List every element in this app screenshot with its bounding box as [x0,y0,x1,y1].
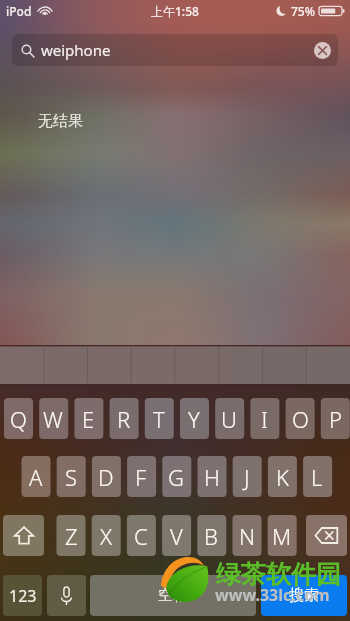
staticText: 75% [291,3,315,19]
staticText: Z [65,521,78,551]
staticText: I [261,404,268,434]
button[interactable]: Z [57,515,85,556]
staticText: 123 [9,585,37,607]
staticText: O [292,404,309,434]
staticText: W [43,404,63,434]
staticText: K [276,462,289,492]
staticText: R [117,404,131,434]
button[interactable]: T [145,398,173,439]
button[interactable]: H [198,456,226,497]
staticText: H [204,462,220,492]
staticText: L [311,462,323,492]
staticText: 上午1:58 [151,3,199,19]
button[interactable]: S [57,456,85,497]
button[interactable]: F [127,456,155,497]
button[interactable]: 123 [3,575,42,616]
button[interactable]: A [22,456,50,497]
button[interactable]: I [250,398,278,439]
button[interactable]: L [303,456,331,497]
button[interactable]: Dictation [47,575,86,616]
button[interactable]: 空格 [90,575,256,616]
button[interactable]: K [268,456,296,497]
staticText: U [221,404,237,434]
button[interactable]: B [197,515,225,556]
staticText: iPod [6,3,32,19]
button[interactable]: Clear [314,42,331,59]
staticText: S [65,462,78,492]
staticText: N [239,521,256,551]
button[interactable]: D [92,456,120,497]
staticText: 空格 [158,586,188,605]
staticText: B [204,521,218,551]
staticText: P [329,404,342,434]
button[interactable]: Backspace [306,515,347,556]
button[interactable]: E [74,398,102,439]
staticText: C [134,521,148,551]
staticText: X [100,521,113,551]
staticText: 无结果 [38,112,83,131]
staticText: A [29,462,43,492]
button[interactable]: N [233,515,261,556]
button[interactable]: Y [180,398,208,439]
button[interactable]: weiphone [12,34,338,66]
staticText: M [272,521,292,551]
staticText: Q [10,404,27,434]
button[interactable]: Q [4,398,32,439]
staticText: D [98,462,114,492]
button[interactable]: V [162,515,190,556]
staticText: E [82,404,95,434]
staticText: F [135,462,147,492]
button[interactable]: U [215,398,243,439]
staticText: www.33lc.com [215,584,330,606]
button[interactable]: 搜索 [261,575,347,616]
staticText: weiphone [41,40,111,60]
button[interactable]: M [268,515,296,556]
button[interactable]: R [110,398,138,439]
button[interactable]: O [286,398,314,439]
button[interactable]: W [39,398,67,439]
staticText: 搜索 [289,586,319,605]
button[interactable]: X [92,515,120,556]
button[interactable]: P [321,398,349,439]
button[interactable]: J [233,456,261,497]
button[interactable]: G [162,456,190,497]
staticText: T [153,404,165,434]
button[interactable]: Shift [3,515,44,556]
staticText: 绿茶软件园 [216,559,341,590]
staticText: Y [188,404,200,434]
button[interactable]: C [127,515,155,556]
staticText: V [170,521,183,551]
staticText: J [244,462,250,492]
staticText: G [168,462,184,492]
